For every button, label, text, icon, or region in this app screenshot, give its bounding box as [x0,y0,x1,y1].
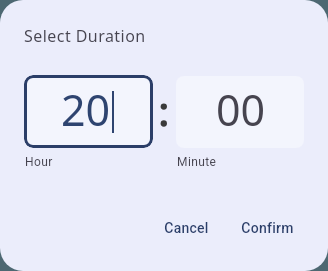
staticText: Hour [25,155,53,169]
button[interactable]: 20 [24,75,153,148]
button[interactable]: Cancel [152,214,221,242]
staticText: Confirm [241,220,294,236]
button[interactable]: 00 [176,76,304,148]
staticText: Select Duration [24,25,146,47]
staticText: 20 [61,80,111,139]
staticText: Minute [177,155,217,169]
button[interactable]: Confirm [229,214,306,242]
staticText: Cancel [164,220,209,236]
staticText: 00 [216,80,266,139]
